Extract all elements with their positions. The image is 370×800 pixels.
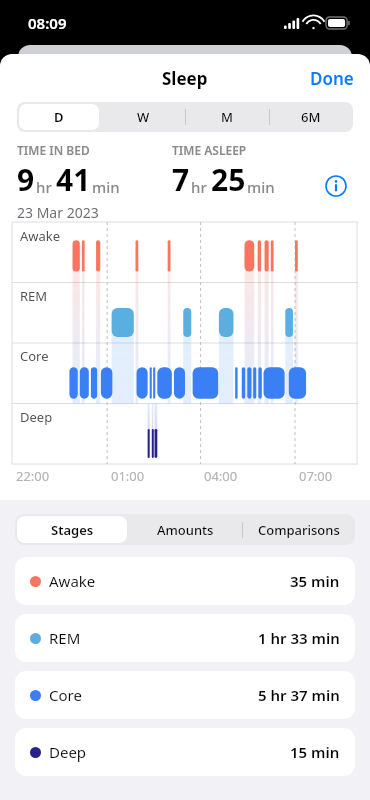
staticText: REM [49,628,81,648]
staticText: min [92,177,120,197]
staticText: Done [310,67,354,90]
staticText: hr [36,177,52,197]
staticText: 07:00 [299,467,333,485]
staticText: min [247,177,275,197]
staticText: 08:09 [28,13,67,33]
staticText: Deep [20,408,53,426]
button[interactable]: Amounts [129,514,242,545]
staticText: M [221,108,233,126]
staticText: 22:00 [16,467,50,485]
staticText: 7 [172,159,190,200]
staticText: Core [20,347,49,365]
button[interactable]: Deep [15,728,355,776]
staticText: 23 Mar 2023 [17,203,99,222]
staticText: D [54,108,64,126]
staticText: 9 [17,159,35,200]
staticText: 1 hr 33 min [258,628,340,648]
button[interactable]: Comparisons [242,514,355,545]
staticText: 04:00 [204,467,238,485]
staticText: TIME IN BED [17,142,172,158]
staticText: 15 min [290,742,340,762]
staticText: REM [20,287,48,305]
staticText: Stages [51,521,94,539]
staticText: Sleep [162,67,208,90]
staticText: Core [49,685,82,705]
staticText: hr [191,177,207,197]
staticText: 01:00 [111,467,145,485]
staticText: 6M [301,108,321,126]
button[interactable]: Information [319,169,353,203]
staticText: 41 [56,159,91,200]
staticText: 5 hr 37 min [258,685,340,705]
staticText: 25 [211,159,246,200]
button[interactable]: Core [15,671,355,719]
staticText: Comparisons [258,521,340,539]
staticText: TIME ASLEEP [172,142,247,158]
staticText: Awake [20,227,61,245]
button[interactable]: Stages [15,514,129,545]
button[interactable]: Awake [15,557,355,605]
button[interactable]: M [185,102,269,132]
staticText: Awake [49,571,96,591]
staticText: 35 min [290,571,340,591]
button[interactable]: D [17,102,101,132]
button[interactable]: REM [15,614,355,662]
staticText: Amounts [157,521,214,539]
button[interactable]: 6M [269,102,353,132]
button[interactable]: W [101,102,185,132]
staticText: W [137,108,150,126]
button[interactable]: Done [294,59,370,98]
staticText: Deep [49,742,87,762]
